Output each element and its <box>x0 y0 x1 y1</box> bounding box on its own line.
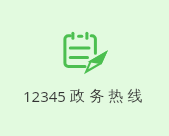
staticText: 12345 <box>23 86 66 106</box>
button[interactable]: 12345政务热线 <box>0 0 169 136</box>
staticText: 政务热线 <box>70 87 147 106</box>
